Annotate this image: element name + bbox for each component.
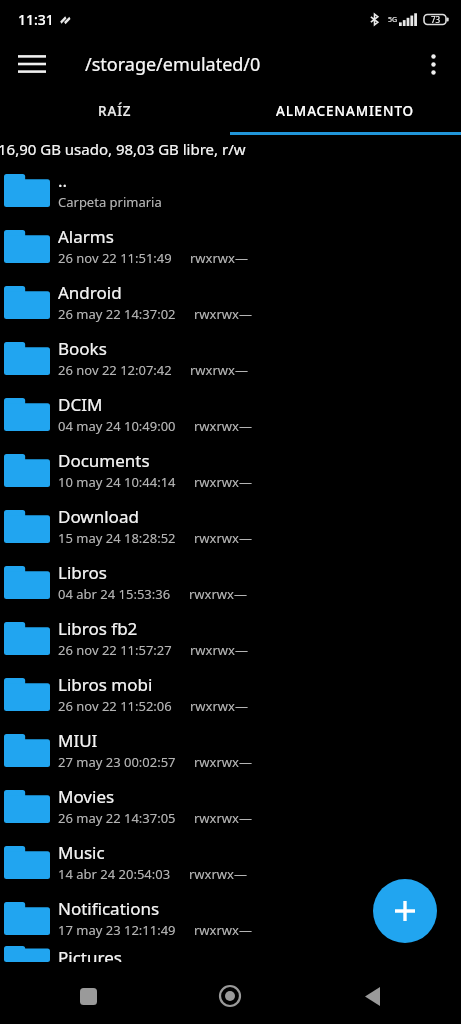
button[interactable]: Movies <box>0 778 461 834</box>
staticText: rwxrwx— <box>190 249 248 267</box>
staticText: 04 may 24 10:49:00 <box>58 417 176 435</box>
staticText: Movies <box>58 785 115 808</box>
button[interactable]: ALMACENAMIENTO <box>230 90 461 132</box>
button[interactable]: Download <box>0 498 461 554</box>
staticText: 5G <box>388 15 398 25</box>
button[interactable]: Libros mobi <box>0 666 461 722</box>
staticText: 26 nov 22 12:07:42 <box>58 361 172 379</box>
staticText: DCIM <box>58 393 103 416</box>
staticText: rwxrwx— <box>194 305 252 323</box>
staticText: Books <box>58 337 107 360</box>
button[interactable]: DCIM <box>0 386 461 442</box>
button[interactable]: Recents <box>18 972 159 1020</box>
button[interactable]: Documents <box>0 442 461 498</box>
staticText: 26 may 22 14:37:05 <box>58 809 176 827</box>
staticText: .. <box>58 169 68 192</box>
staticText: RAÍZ <box>98 102 132 120</box>
button[interactable]: Android <box>0 274 461 330</box>
staticText: Libros fb2 <box>58 617 138 640</box>
staticText: 11:31 <box>18 10 54 29</box>
staticText: /storage/emulated/0 <box>85 52 261 77</box>
button[interactable]: RAÍZ <box>0 90 230 132</box>
staticText: 73 <box>431 14 441 25</box>
staticText: 15 may 24 18:28:52 <box>58 529 176 547</box>
staticText: 04 abr 24 15:53:36 <box>58 585 171 603</box>
staticText: rwxrwx— <box>190 697 248 715</box>
button[interactable]: Pictures <box>0 946 461 962</box>
staticText: 27 may 23 00:02:57 <box>58 753 176 771</box>
staticText: 14 abr 24 20:54:03 <box>58 865 171 883</box>
staticText: Carpeta primaria <box>58 193 162 211</box>
staticText: Alarms <box>58 225 114 248</box>
staticText: 16,90 GB usado, 98,03 GB libre, r/w <box>0 139 246 159</box>
button[interactable]: Home <box>159 972 301 1020</box>
button[interactable]: Libros <box>0 554 461 610</box>
button[interactable]: Libros fb2 <box>0 610 461 666</box>
staticText: 26 may 22 14:37:02 <box>58 305 176 323</box>
staticText: ALMACENAMIENTO <box>276 102 415 120</box>
staticText: Libros mobi <box>58 673 153 696</box>
staticText: rwxrwx— <box>190 641 248 659</box>
button[interactable]: Add <box>373 879 437 943</box>
button[interactable]: Notifications <box>0 890 461 946</box>
staticText: rwxrwx— <box>190 361 248 379</box>
staticText: 26 nov 22 11:52:06 <box>58 697 172 715</box>
button[interactable]: Back <box>301 972 443 1020</box>
staticText: rwxrwx— <box>194 809 252 827</box>
staticText: 26 nov 22 11:51:49 <box>58 249 172 267</box>
staticText: 26 nov 22 11:57:27 <box>58 641 172 659</box>
staticText: Music <box>58 841 105 864</box>
staticText: MIUI <box>58 729 98 752</box>
staticText: rwxrwx— <box>189 585 247 603</box>
staticText: rwxrwx— <box>194 417 252 435</box>
staticText: Android <box>58 281 122 304</box>
staticText: Libros <box>58 561 107 584</box>
staticText: Download <box>58 505 139 528</box>
staticText: 17 may 23 12:11:49 <box>58 921 176 939</box>
button[interactable]: Navigation drawer <box>10 42 54 86</box>
staticText: rwxrwx— <box>194 473 252 491</box>
staticText: rwxrwx— <box>194 753 252 771</box>
button[interactable]: MIUI <box>0 722 461 778</box>
button[interactable]: Books <box>0 330 461 386</box>
staticText: rwxrwx— <box>194 529 252 547</box>
staticText: rwxrwx— <box>189 865 247 883</box>
staticText: Documents <box>58 449 150 472</box>
button[interactable]: More options <box>411 42 455 86</box>
staticText: 10 may 24 10:44:14 <box>58 473 176 491</box>
staticText: rwxrwx— <box>194 921 252 939</box>
button[interactable]: Alarms <box>0 218 461 274</box>
staticText: Notifications <box>58 897 160 920</box>
staticText: Pictures <box>58 946 122 962</box>
button[interactable]: Music <box>0 834 461 890</box>
button[interactable]: .. <box>0 162 461 218</box>
